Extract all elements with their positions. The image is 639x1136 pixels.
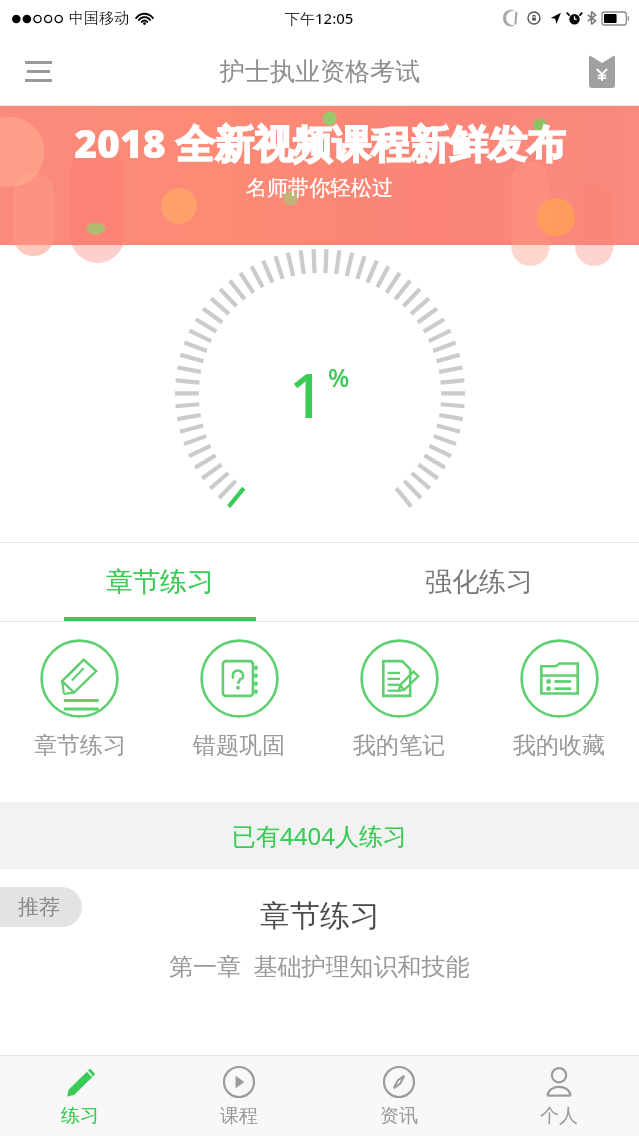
staticText: 强化练习 [425,565,533,599]
button[interactable]: Menu [12,45,64,97]
button[interactable]: 错题巩固 [159,639,319,760]
staticText: 推荐 [18,894,60,920]
button[interactable]: 练习 [0,1056,159,1136]
staticText: 护士执业资格考试 [220,56,420,87]
staticText: 2018 全新视频课程新鲜发布 [74,116,566,169]
button[interactable]: 我的收藏 [479,639,639,760]
staticText: % [328,360,350,394]
staticText: 我的笔记 [353,731,445,760]
staticText: 个人 [540,1104,578,1128]
staticText: 名师带你轻松过 [246,175,393,201]
staticText: 章节练习 [106,565,214,599]
staticText: 中国移动 [69,9,129,28]
staticText: 已有4404人练习 [232,819,407,852]
button[interactable]: 已有4404人练习 [0,802,639,869]
button[interactable]: 个人 [479,1056,639,1136]
staticText: 我的收藏 [513,731,605,760]
button[interactable]: 资讯 [319,1056,479,1136]
staticText: 章节练习 [34,731,126,760]
staticText: 下午12:05 [285,8,354,28]
staticText: 第一章 基础护理知识和技能 [169,949,470,982]
button[interactable]: 我的笔记 [319,639,479,760]
button[interactable]: 2018 全新视频课程新鲜发布 [0,106,639,245]
staticText: 1 [289,352,325,436]
staticText: 章节练习 [260,897,380,935]
staticText: 资讯 [380,1104,418,1128]
button[interactable]: Red packet [579,48,625,94]
staticText: 错题巩固 [193,731,285,760]
button[interactable]: 课程 [159,1056,319,1136]
button[interactable]: 强化练习 [319,543,639,621]
staticText: 练习 [61,1104,99,1128]
button[interactable]: 章节练习 [0,639,159,760]
button[interactable]: 章节练习 [0,543,319,621]
staticText: 课程 [220,1104,258,1128]
